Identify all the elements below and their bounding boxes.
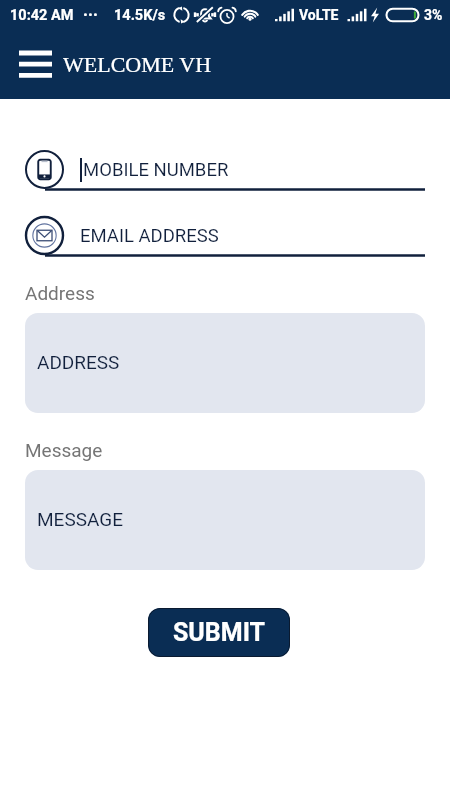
staticText: WELCOME VH	[63, 52, 212, 76]
staticText: 3%	[424, 7, 443, 23]
button[interactable]: EMAIL ADDRESS	[0, 216, 450, 257]
staticText: 10:42 AM	[10, 7, 74, 24]
staticText: ...	[83, 0, 98, 20]
staticText: Address	[25, 282, 95, 304]
staticText: 14.5K/s	[114, 7, 166, 24]
staticText: MOBILE NUMBER	[83, 159, 229, 181]
button[interactable]: MESSAGE	[25, 470, 425, 570]
staticText: Message	[25, 439, 103, 461]
staticText: EMAIL ADDRESS	[80, 225, 219, 247]
button[interactable]: SUBMIT	[148, 608, 290, 657]
button[interactable]: ADDRESS	[25, 313, 425, 413]
button[interactable]: MOBILE NUMBER	[0, 150, 450, 191]
staticText: MESSAGE	[37, 508, 123, 530]
button[interactable]: Open navigation menu	[19, 48, 52, 80]
staticText: ADDRESS	[37, 351, 120, 373]
staticText: SUBMIT	[173, 618, 266, 647]
staticText: VoLTE	[299, 7, 339, 23]
